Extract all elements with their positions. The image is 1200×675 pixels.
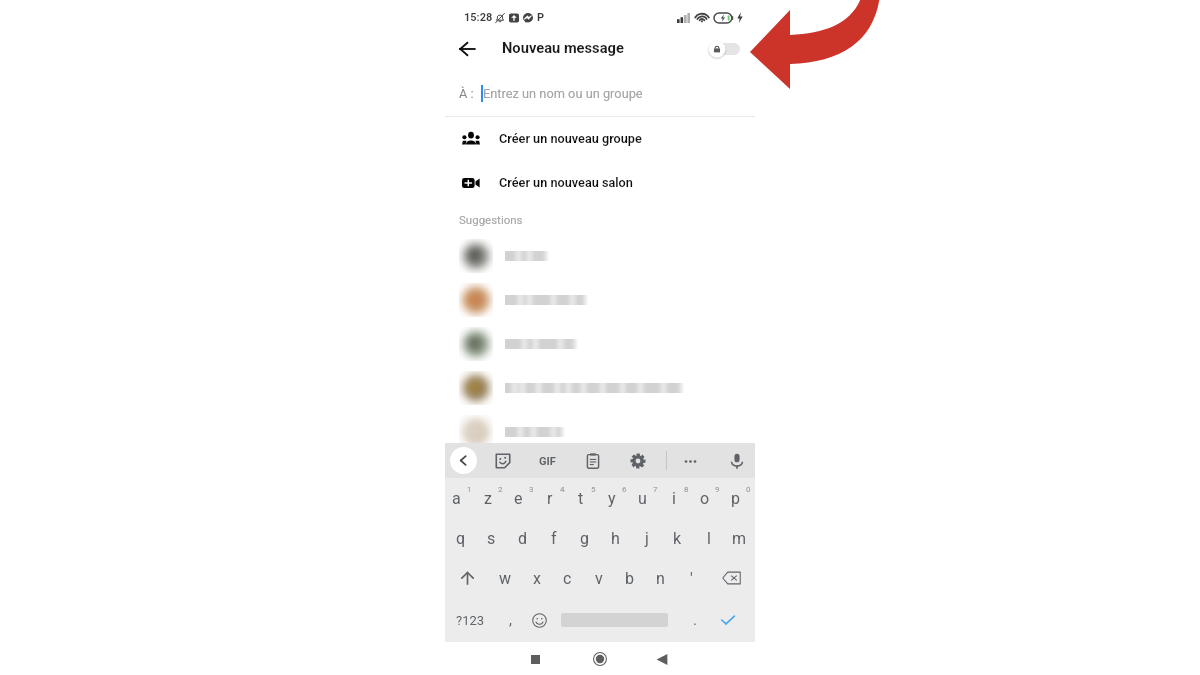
button[interactable]: Home [587, 646, 613, 672]
button[interactable]: . [679, 598, 710, 642]
staticText: 15:28 [464, 11, 493, 24]
button[interactable]: Shift [445, 558, 490, 598]
button[interactable]: Back [649, 646, 675, 672]
button[interactable]: g [569, 518, 600, 558]
button[interactable]: h [600, 518, 631, 558]
staticText: P [537, 11, 545, 24]
staticText: k [673, 529, 682, 548]
button[interactable]: Clipboard [580, 448, 606, 474]
staticText: p [731, 489, 740, 508]
button[interactable]: Back [453, 32, 487, 66]
button[interactable]: Créer un nouveau groupe [445, 117, 755, 160]
button[interactable]: w [490, 558, 521, 598]
staticText: r [547, 489, 553, 508]
button[interactable]: j [631, 518, 662, 558]
button[interactable]: a [445, 478, 476, 518]
staticText: f [551, 529, 557, 548]
staticText: h [611, 529, 620, 548]
staticText: y [608, 489, 616, 508]
button[interactable] [445, 322, 755, 366]
staticText: Créer un nouveau groupe [499, 131, 642, 146]
button[interactable]: r [538, 478, 569, 518]
staticText: s [487, 529, 496, 548]
button[interactable]: GIF [533, 447, 561, 475]
staticText: . [693, 611, 697, 629]
button[interactable]: Backspace [707, 558, 755, 598]
button[interactable]: More options [677, 448, 703, 474]
staticText: 6 [622, 485, 627, 494]
button[interactable]: Recent apps [522, 646, 548, 672]
staticText: À : [459, 86, 474, 101]
button[interactable]: k [662, 518, 693, 558]
button[interactable]: Enter [710, 598, 755, 642]
button[interactable]: u [631, 478, 662, 518]
button[interactable]: Secret conversation [708, 38, 740, 60]
button[interactable]: Settings [625, 448, 651, 474]
staticText: l [707, 529, 711, 548]
staticText: 1 [467, 485, 472, 494]
staticText: g [580, 529, 589, 548]
button[interactable] [445, 278, 755, 322]
staticText: w [499, 569, 512, 588]
staticText: t [578, 489, 584, 508]
button[interactable]: Back [450, 447, 477, 474]
button[interactable]: Emoji [524, 598, 555, 642]
button[interactable]: y [600, 478, 631, 518]
button[interactable]: c [552, 558, 583, 598]
staticText: 2 [498, 485, 503, 494]
staticText: b [625, 569, 634, 588]
button[interactable]: l [693, 518, 724, 558]
button[interactable] [445, 234, 755, 278]
staticText: m [732, 529, 747, 548]
button[interactable]: q [445, 518, 476, 558]
staticText: j [645, 529, 649, 548]
button[interactable]: e [507, 478, 538, 518]
staticText: z [484, 489, 492, 508]
button[interactable]: t [569, 478, 600, 518]
button[interactable]: d [507, 518, 538, 558]
button[interactable]: s [476, 518, 507, 558]
staticText: 5 [591, 485, 596, 494]
button[interactable]: Stickers [490, 448, 516, 474]
staticText: 7 [653, 485, 658, 494]
button[interactable]: p [724, 478, 755, 518]
staticText: o [700, 489, 710, 508]
button[interactable]: b [614, 558, 645, 598]
staticText: 4 [560, 485, 565, 494]
button[interactable]: v [583, 558, 614, 598]
button[interactable]: ?123 [445, 598, 496, 642]
button[interactable]: n [645, 558, 676, 598]
button[interactable]: Voice input [724, 448, 750, 474]
staticText: e [514, 489, 523, 508]
staticText: i [672, 489, 676, 508]
staticText: 9 [715, 485, 720, 494]
button[interactable]: x [521, 558, 552, 598]
staticText: n [656, 569, 665, 588]
staticText: , [509, 611, 512, 629]
staticText: d [518, 529, 528, 548]
staticText: Entrez un nom ou un groupe [483, 86, 643, 101]
button[interactable]: Créer un nouveau salon [445, 161, 755, 204]
button[interactable] [445, 366, 755, 410]
button[interactable]: i [662, 478, 693, 518]
staticText: x [533, 569, 541, 588]
button[interactable]: ' [676, 558, 707, 598]
staticText: Suggestions [459, 213, 523, 226]
staticText: a [452, 489, 461, 508]
staticText: ' [690, 569, 693, 588]
button[interactable]: f [538, 518, 569, 558]
button[interactable]: , [496, 598, 524, 642]
staticText: q [456, 529, 466, 548]
staticText: 8 [684, 485, 689, 494]
staticText: Nouveau message [502, 39, 624, 56]
button[interactable]: Space [555, 598, 679, 642]
button[interactable]: z [476, 478, 507, 518]
button[interactable] [445, 410, 755, 454]
button[interactable]: m [724, 518, 755, 558]
staticText: c [563, 569, 572, 588]
button[interactable]: o [693, 478, 724, 518]
staticText: Créer un nouveau salon [499, 175, 633, 190]
staticText: GIF [539, 455, 556, 468]
staticText: u [638, 489, 647, 508]
staticText: v [595, 569, 603, 588]
